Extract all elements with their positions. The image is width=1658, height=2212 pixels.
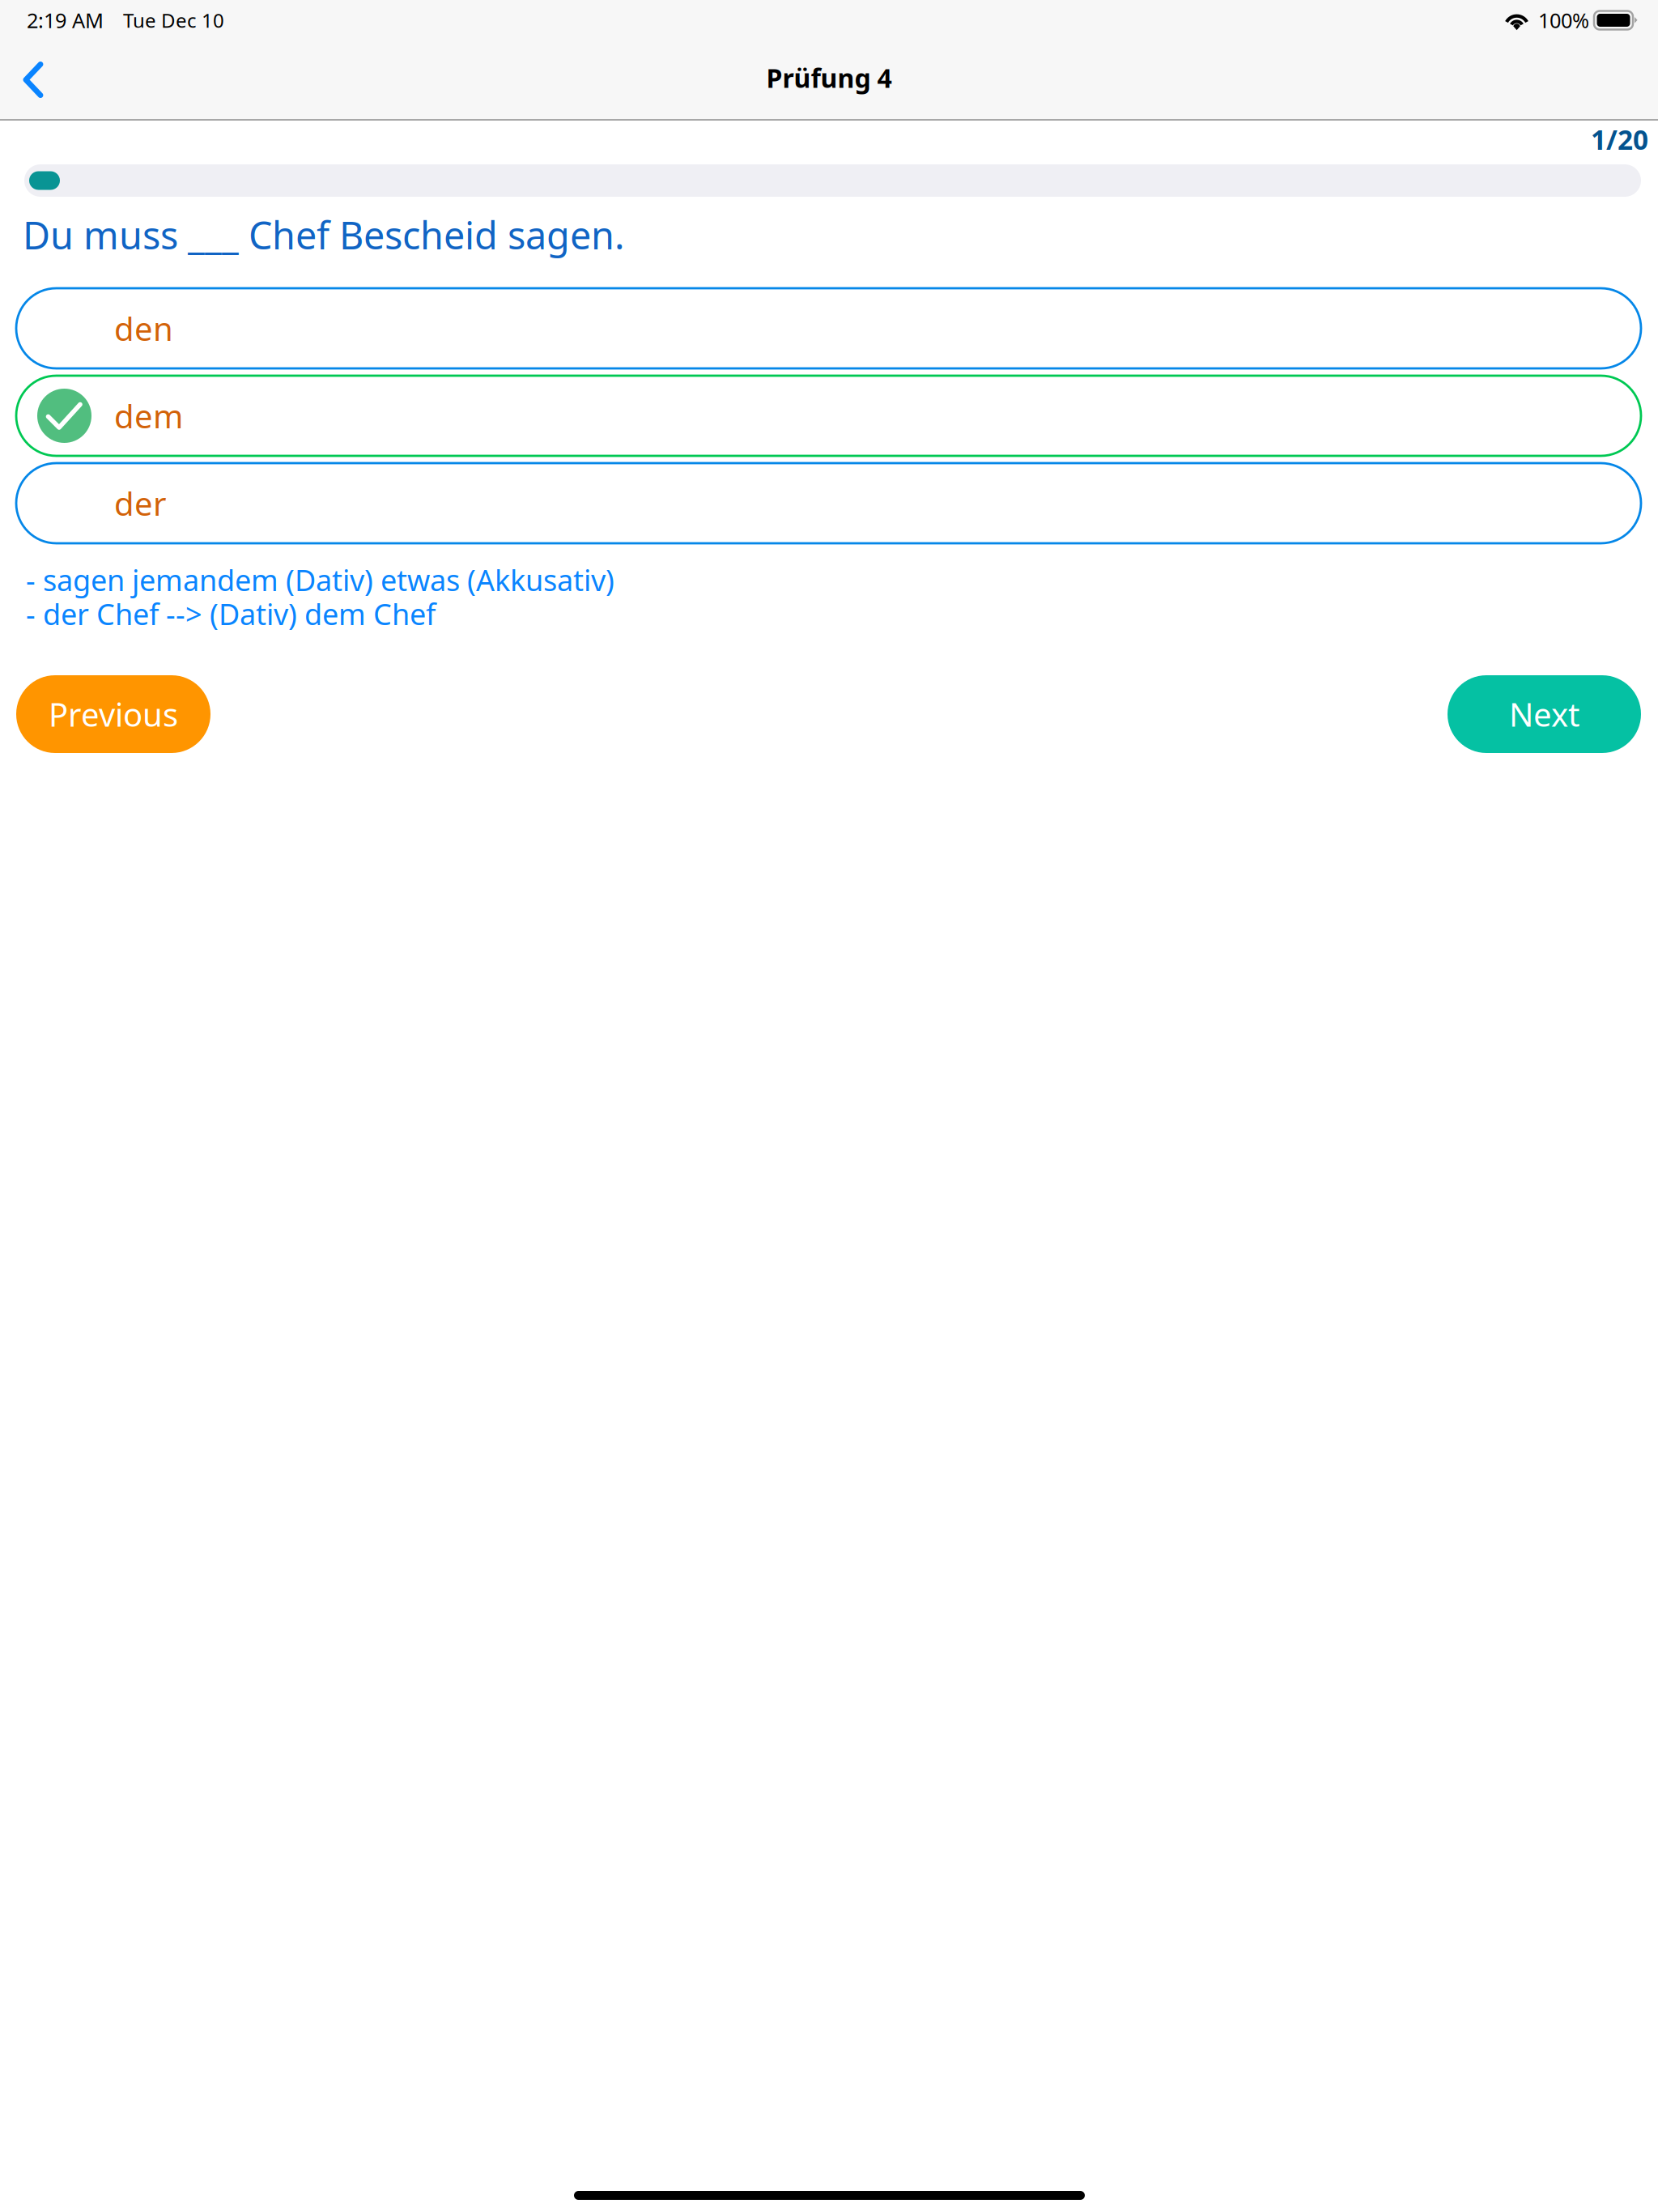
staticText: Previous bbox=[49, 693, 178, 736]
button[interactable]: Previous bbox=[16, 675, 210, 753]
staticText: den bbox=[114, 307, 173, 350]
button[interactable]: den bbox=[16, 288, 1641, 368]
staticText: Tue Dec 10 bbox=[123, 7, 224, 33]
staticText: Prüfung 4 bbox=[766, 61, 892, 95]
button[interactable]: Next bbox=[1448, 675, 1641, 753]
button[interactable]: Back bbox=[23, 62, 43, 98]
button[interactable]: der bbox=[16, 463, 1641, 543]
staticText: 2:19 AM bbox=[27, 7, 104, 34]
staticText: - sagen jemandem (Dativ) etwas (Akkusati… bbox=[26, 560, 614, 599]
staticText: 100% bbox=[1538, 7, 1589, 34]
button[interactable]: dem bbox=[16, 376, 1641, 456]
staticText: der bbox=[114, 482, 167, 525]
staticText: dem bbox=[114, 394, 183, 437]
staticText: 1/20 bbox=[1591, 121, 1648, 157]
staticText: Du muss ___ Chef Bescheid sagen. bbox=[23, 210, 625, 260]
staticText: - der Chef --> (Dativ) dem Chef bbox=[26, 594, 436, 633]
staticText: Next bbox=[1509, 693, 1579, 736]
